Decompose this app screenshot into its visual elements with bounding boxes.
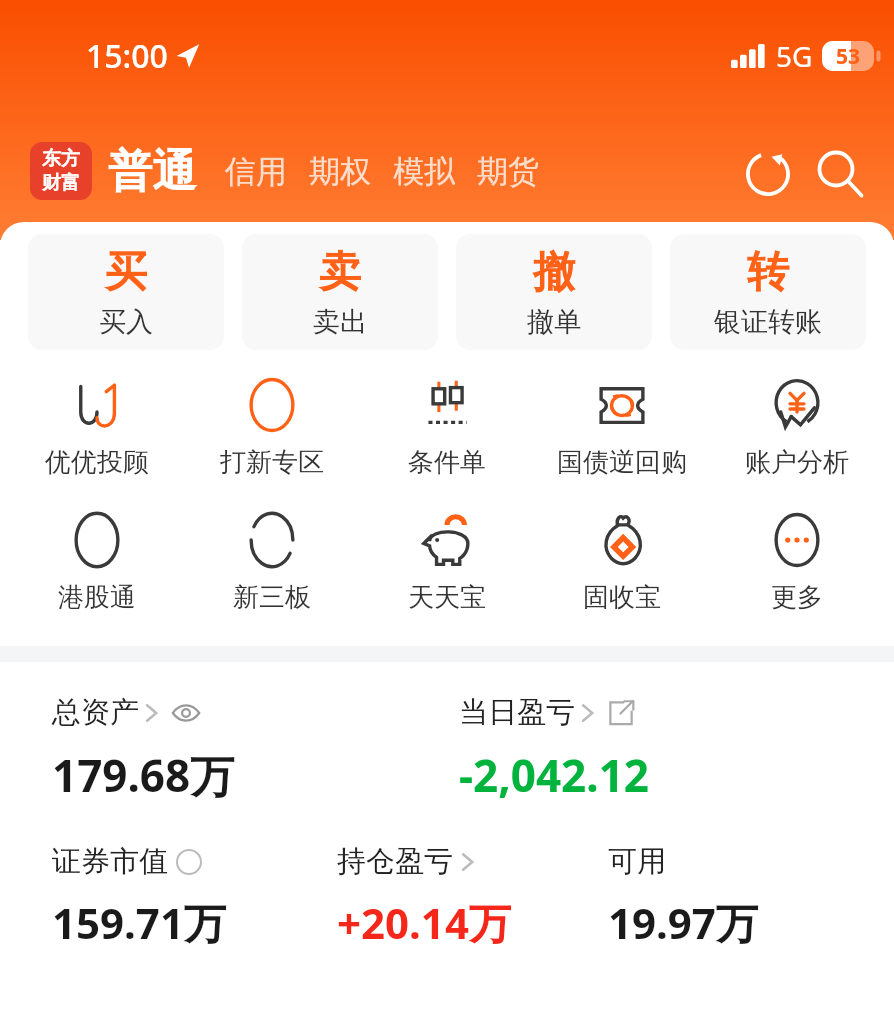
staticText: 买入 — [99, 305, 153, 339]
button[interactable]: 打新专区 — [184, 372, 359, 483]
button[interactable]: 更多 — [709, 507, 884, 618]
staticText: +20.14万 — [337, 894, 511, 951]
button[interactable]: 天天宝 — [359, 507, 534, 618]
staticText: 固收宝 — [583, 581, 661, 614]
staticText: 天天宝 — [408, 581, 486, 614]
staticText: 港股通 — [58, 581, 136, 614]
staticText: 信用 — [225, 152, 287, 191]
button[interactable]: 总资产 — [52, 694, 201, 731]
button[interactable]: 期权 — [298, 152, 382, 191]
other: Share — [607, 699, 635, 727]
staticText: 5G — [776, 37, 813, 75]
staticText: 条件单 — [408, 446, 486, 479]
staticText: 新三板 — [233, 581, 311, 614]
button[interactable]: 新三板 — [184, 507, 359, 618]
other: Toggle visibility — [171, 698, 201, 728]
staticText: 期货 — [477, 152, 539, 191]
button[interactable]: 证券市值 — [52, 843, 202, 880]
button[interactable]: 买 — [28, 234, 224, 350]
staticText: 证券市值 — [52, 843, 168, 880]
button[interactable]: 账户分析 — [709, 372, 884, 483]
button[interactable]: 固收宝 — [534, 507, 709, 618]
staticText: 账户分析 — [745, 446, 849, 479]
button[interactable]: 普通 — [108, 144, 196, 199]
staticText: 179.68万 — [52, 745, 235, 805]
staticText: 模拟 — [393, 152, 455, 191]
staticText: 更多 — [771, 581, 823, 614]
staticText: 当日盈亏 — [459, 694, 575, 731]
staticText: 银证转账 — [714, 305, 822, 339]
staticText: 打新专区 — [220, 446, 324, 479]
button[interactable]: 国债逆回购 — [534, 372, 709, 483]
button[interactable]: 卖 — [242, 234, 438, 350]
staticText: 15:00 — [86, 34, 168, 78]
staticText: 普通 — [108, 144, 196, 199]
staticText: 财富 — [42, 171, 80, 195]
staticText: 卖 — [319, 246, 361, 299]
staticText: 优优投顾 — [45, 446, 149, 479]
button[interactable]: Refresh — [736, 142, 800, 206]
staticText: 撤 — [533, 246, 575, 299]
other: Help — [176, 849, 202, 875]
button[interactable]: 转 — [670, 234, 866, 350]
button[interactable]: 当日盈亏 — [459, 694, 635, 731]
staticText: 159.71万 — [52, 894, 226, 951]
button[interactable]: 撤 — [456, 234, 652, 350]
button[interactable]: 持仓盈亏 — [337, 843, 475, 880]
staticText: 53 — [836, 42, 861, 71]
staticText: 东方 — [42, 147, 80, 171]
button[interactable]: 优优投顾 — [10, 372, 184, 483]
staticText: -2,042.12 — [459, 745, 649, 805]
staticText: 撤单 — [527, 305, 581, 339]
staticText: 持仓盈亏 — [337, 843, 453, 880]
staticText: 19.97万 — [608, 894, 758, 951]
button[interactable]: 港股通 — [10, 507, 184, 618]
staticText: 期权 — [309, 152, 371, 191]
staticText: 转 — [747, 246, 789, 299]
staticText: 总资产 — [52, 694, 139, 731]
staticText: 国债逆回购 — [557, 446, 687, 479]
staticText: 卖出 — [313, 305, 367, 339]
button[interactable]: 模拟 — [382, 152, 466, 191]
button[interactable]: 期货 — [466, 152, 550, 191]
button[interactable]: 东方 — [30, 142, 92, 200]
staticText: 可用 — [608, 843, 666, 880]
button[interactable]: 条件单 — [359, 372, 534, 483]
staticText: 买 — [105, 246, 147, 299]
button[interactable]: 信用 — [214, 152, 298, 191]
button[interactable]: Search — [808, 142, 872, 206]
